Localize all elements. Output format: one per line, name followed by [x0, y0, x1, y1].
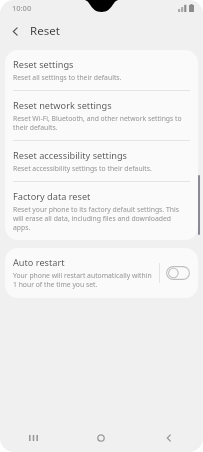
staticText: Reset Wi-Fi, Bluetooth, and other networ…	[13, 114, 188, 132]
staticText: Reset accessibility settings to their de…	[13, 164, 152, 173]
staticText: Reset all settings to their defaults.	[13, 73, 122, 82]
staticText: Reset	[30, 23, 60, 39]
staticText: Reset your phone to its factory default …	[13, 205, 188, 232]
staticText: Factory data reset	[13, 190, 91, 203]
button[interactable]: Factory data reset	[5, 182, 198, 240]
button[interactable]: Back	[0, 16, 30, 46]
staticText: Your phone will restart automatically wi…	[13, 271, 154, 289]
button[interactable]: Auto restart toggle	[166, 266, 190, 280]
button[interactable]: Recent apps	[0, 424, 67, 452]
staticText: Auto restart	[13, 256, 65, 269]
staticText: Reset settings	[13, 58, 74, 71]
button[interactable]: Home	[67, 424, 135, 452]
button[interactable]: Auto restart	[5, 248, 198, 298]
staticText: Reset network settings	[13, 99, 112, 112]
button[interactable]: Reset network settings	[5, 91, 198, 140]
button[interactable]: Reset settings	[5, 50, 198, 90]
staticText: Reset accessibility settings	[13, 149, 127, 162]
button[interactable]: Reset accessibility settings	[5, 141, 198, 181]
staticText: 10:00	[12, 3, 32, 13]
button[interactable]: Back	[135, 424, 203, 452]
